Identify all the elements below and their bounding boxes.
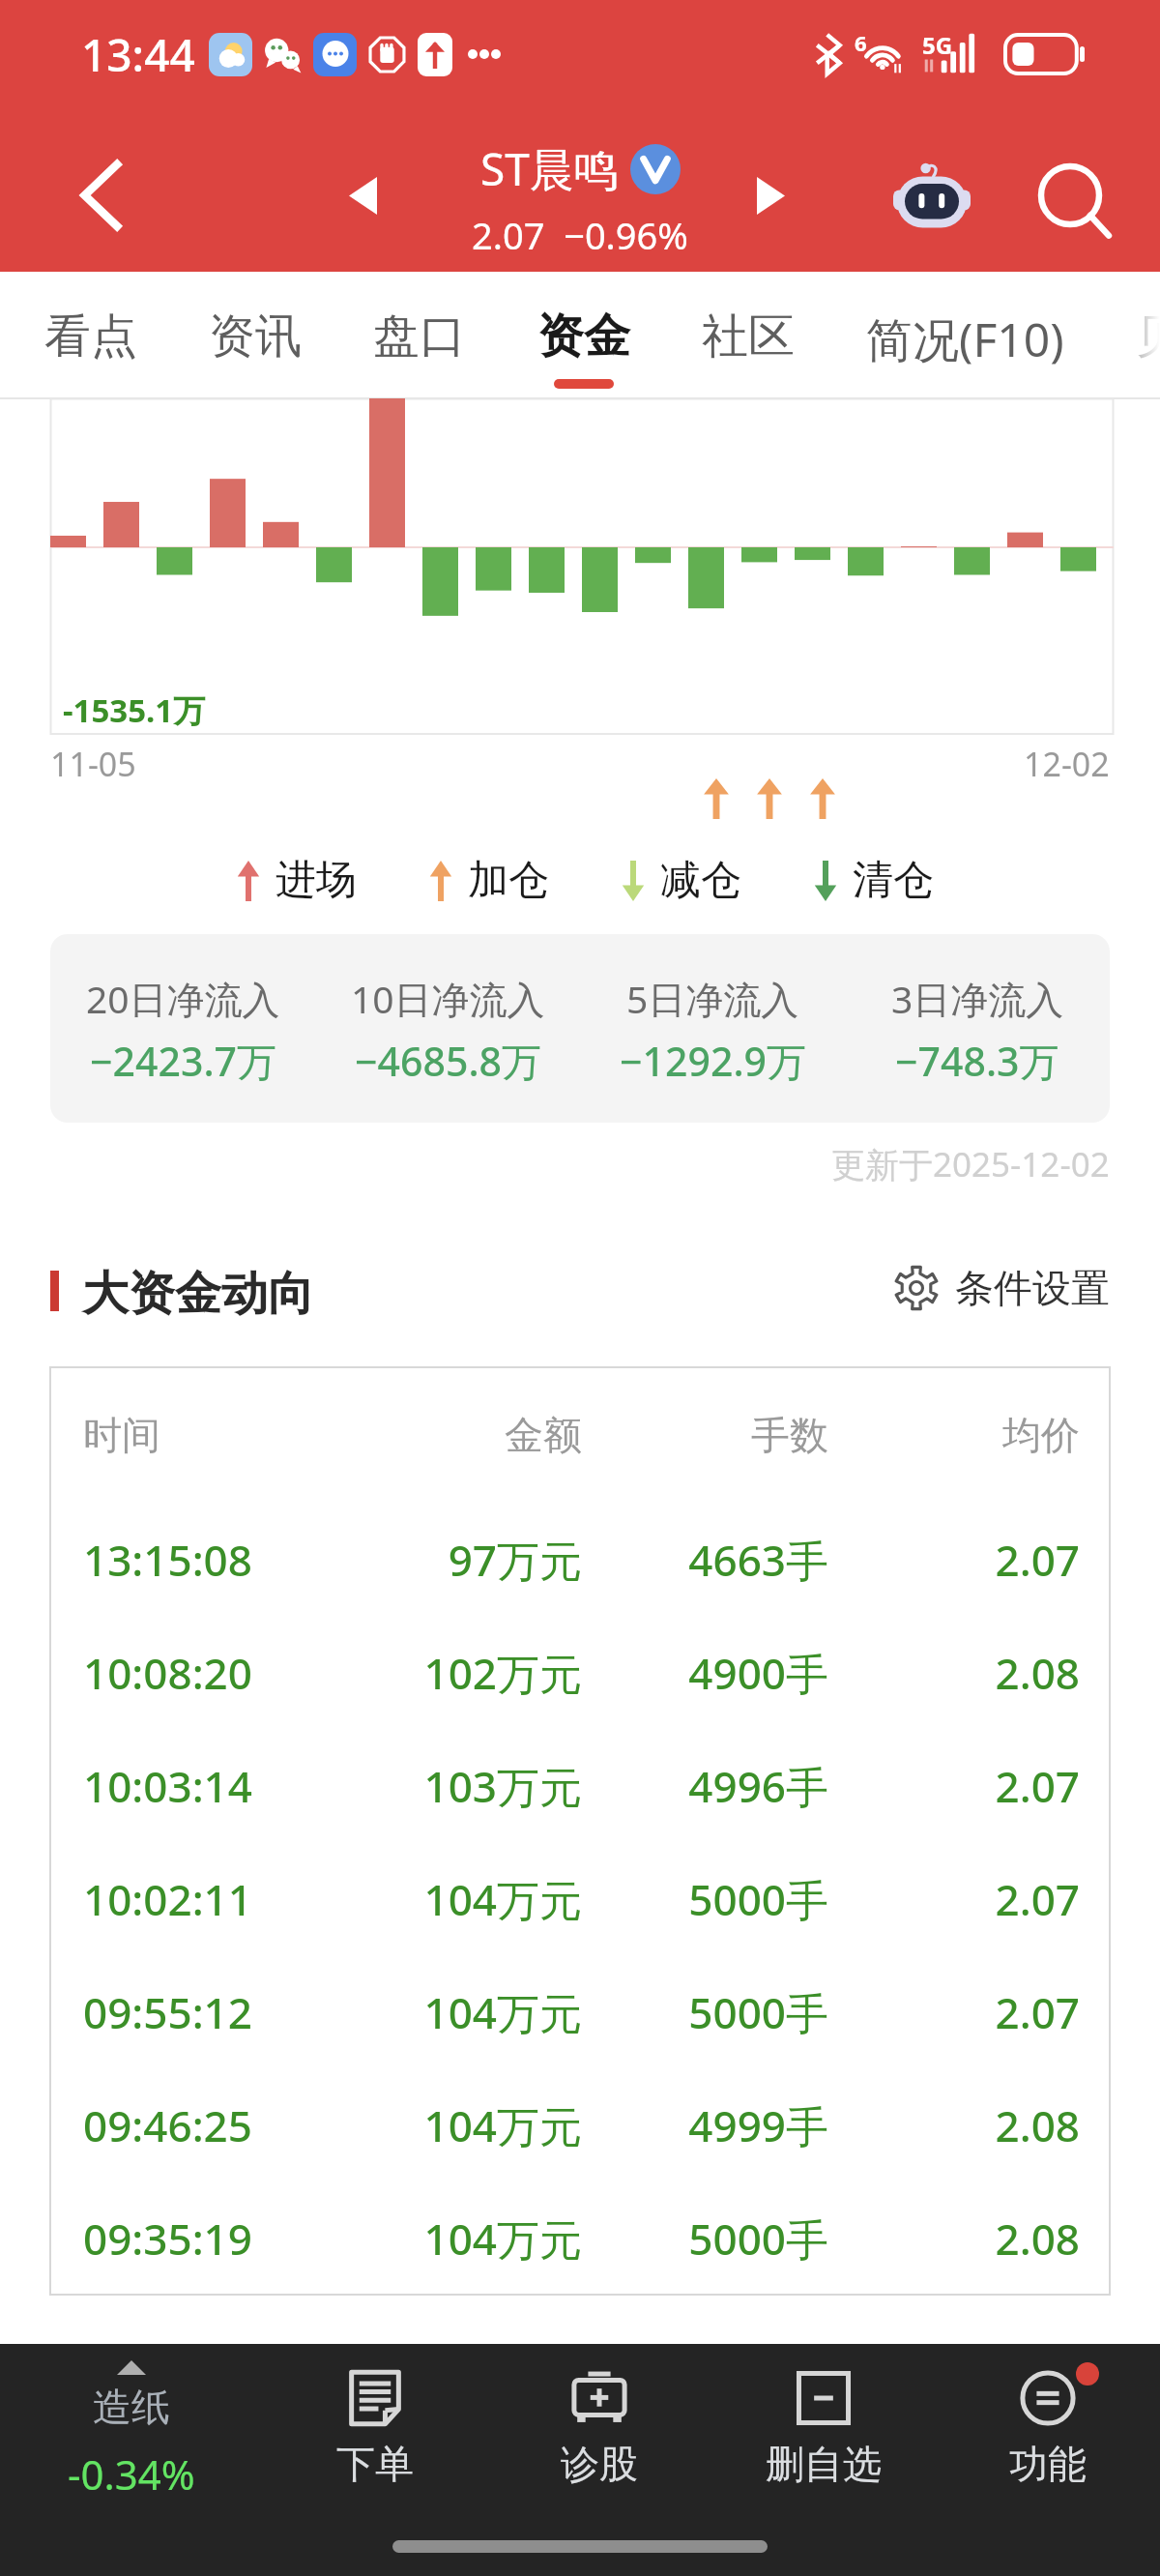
staticText: 104万元 bbox=[363, 1983, 582, 2041]
staticText: −748.3万 bbox=[895, 1034, 1059, 1088]
staticText: 5日净流入 bbox=[626, 973, 799, 1024]
staticText: 09:55:12 bbox=[83, 1983, 363, 2041]
staticText: −4685.8万 bbox=[355, 1034, 541, 1088]
button[interactable]: 10:02:11 bbox=[83, 1842, 1080, 1955]
staticText: 20日净流入 bbox=[86, 973, 280, 1024]
button[interactable]: 资讯 bbox=[191, 272, 319, 398]
staticText: 5000手 bbox=[582, 2210, 828, 2268]
button[interactable]: 09:46:25 bbox=[83, 2068, 1080, 2181]
staticText: 金额 bbox=[363, 1411, 582, 1459]
staticText: 104万元 bbox=[363, 1870, 582, 1928]
button[interactable]: Search bbox=[1024, 153, 1124, 253]
staticText: 2.07 −0.96% bbox=[472, 210, 688, 260]
staticText: 09:35:19 bbox=[83, 2210, 363, 2268]
button[interactable]: 贝 bbox=[1118, 272, 1160, 398]
button[interactable]: 删自选 bbox=[711, 2344, 936, 2518]
button[interactable]: 简况(F10) bbox=[849, 272, 1082, 398]
staticText: 社区 bbox=[702, 307, 795, 366]
staticText: 更新于2025-12-02 bbox=[831, 1141, 1110, 1187]
staticText: 加仓 bbox=[468, 855, 549, 906]
staticText: 清仓 bbox=[853, 855, 934, 906]
staticText: 4996手 bbox=[582, 1757, 828, 1815]
button[interactable]: 盘口 bbox=[356, 272, 483, 398]
staticText: 102万元 bbox=[363, 1644, 582, 1702]
staticText: −2423.7万 bbox=[90, 1034, 276, 1088]
staticText: 12-02 bbox=[1024, 742, 1110, 786]
staticText: -0.34% bbox=[68, 2446, 195, 2502]
button[interactable]: 09:35:19 bbox=[83, 2181, 1080, 2295]
staticText: 时间 bbox=[83, 1411, 363, 1459]
staticText: 诊股 bbox=[561, 2440, 638, 2488]
staticText: 手数 bbox=[582, 1411, 828, 1459]
staticText: 104万元 bbox=[363, 2210, 582, 2268]
staticText: 资金 bbox=[537, 307, 630, 366]
staticText: 10:03:14 bbox=[83, 1757, 363, 1815]
button[interactable]: 条件设置 bbox=[893, 1264, 1110, 1312]
button[interactable]: 资金 bbox=[520, 272, 648, 398]
staticText: 13:15:08 bbox=[83, 1531, 363, 1589]
staticText: 97万元 bbox=[363, 1531, 582, 1589]
staticText: 2.08 bbox=[828, 2210, 1080, 2268]
staticText: 5G bbox=[922, 29, 953, 61]
staticText: 4900手 bbox=[582, 1644, 828, 1702]
button[interactable]: 看点 bbox=[27, 272, 155, 398]
button[interactable]: 造纸 bbox=[0, 2344, 263, 2518]
staticText: 11-05 bbox=[50, 742, 136, 786]
staticText: 5000手 bbox=[582, 1983, 828, 2041]
staticText: 10:02:11 bbox=[83, 1870, 363, 1928]
button[interactable]: 10:03:14 bbox=[83, 1729, 1080, 1842]
staticText: 13:44 bbox=[81, 24, 195, 85]
staticText: 4999手 bbox=[582, 2096, 828, 2154]
staticText: 删自选 bbox=[766, 2440, 882, 2488]
staticText: 功能 bbox=[1009, 2440, 1087, 2488]
staticText: 2.08 bbox=[828, 1644, 1080, 1702]
button[interactable]: 功能 bbox=[936, 2344, 1160, 2518]
staticText: 4663手 bbox=[582, 1531, 828, 1589]
staticText: 5000手 bbox=[582, 1870, 828, 1928]
staticText: 6 bbox=[855, 28, 867, 57]
staticText: 2.07 bbox=[828, 1757, 1080, 1815]
staticText: 简况(F10) bbox=[866, 307, 1064, 371]
staticText: 进场 bbox=[275, 855, 357, 906]
button[interactable]: Back bbox=[62, 155, 139, 236]
staticText: -1535.1万 bbox=[63, 688, 206, 732]
button[interactable]: Next stock bbox=[737, 161, 804, 230]
staticText: −1292.9万 bbox=[620, 1034, 806, 1088]
staticText: 条件设置 bbox=[955, 1264, 1110, 1312]
button[interactable]: AI assistant bbox=[884, 155, 979, 236]
button[interactable]: 社区 bbox=[684, 272, 812, 398]
button[interactable]: 09:55:12 bbox=[83, 1955, 1080, 2068]
staticText: 减仓 bbox=[660, 855, 741, 906]
staticText: 贝 bbox=[1136, 307, 1143, 366]
staticText: ST晨鸣 bbox=[480, 138, 619, 199]
staticText: 下单 bbox=[336, 2440, 414, 2488]
staticText: 2.07 bbox=[828, 1531, 1080, 1589]
staticText: 2.07 bbox=[828, 1870, 1080, 1928]
button[interactable]: 10:08:20 bbox=[83, 1616, 1080, 1729]
staticText: 10日净流入 bbox=[351, 973, 545, 1024]
staticText: 103万元 bbox=[363, 1757, 582, 1815]
staticText: 均价 bbox=[828, 1411, 1080, 1459]
staticText: 大资金动向 bbox=[82, 1265, 314, 1323]
staticText: 09:46:25 bbox=[83, 2096, 363, 2154]
staticText: 3日净流入 bbox=[891, 973, 1064, 1024]
button[interactable]: 13:15:08 bbox=[83, 1503, 1080, 1616]
staticText: 2.08 bbox=[828, 2096, 1080, 2154]
staticText: 造纸 bbox=[93, 2383, 170, 2431]
staticText: 盘口 bbox=[373, 307, 466, 366]
staticText: 10:08:20 bbox=[83, 1644, 363, 1702]
staticText: 2.07 bbox=[828, 1983, 1080, 2041]
staticText: 看点 bbox=[44, 307, 137, 366]
staticText: 资讯 bbox=[209, 307, 302, 366]
staticText: 104万元 bbox=[363, 2096, 582, 2154]
button[interactable]: Previous stock bbox=[329, 161, 396, 230]
button[interactable]: 诊股 bbox=[487, 2344, 711, 2518]
button[interactable]: 下单 bbox=[263, 2344, 487, 2518]
